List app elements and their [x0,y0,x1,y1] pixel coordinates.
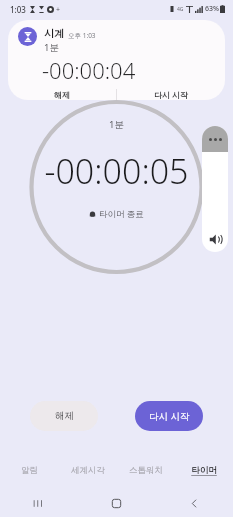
staticText: 스톱워치 [129,465,163,476]
button[interactable]: 타이머 [175,459,233,481]
staticText: 타이머 [191,465,217,476]
button[interactable]: 해제 [30,401,98,431]
staticText: 1분 [44,41,59,54]
button[interactable]: 해제 [8,89,116,100]
button[interactable]: 다시 시작 [135,401,203,431]
button[interactable]: 알림 [0,459,59,481]
staticText: 63% [205,4,219,14]
staticText: -00:00:04 [42,55,136,85]
button[interactable]: 스톱워치 [117,459,175,481]
button[interactable]: Back [155,489,233,517]
staticText: 다시 시작 [154,89,189,100]
staticText: 4G [177,6,184,13]
button[interactable]: Home [77,489,155,517]
staticText: 시계 [44,27,64,40]
staticText: + [56,5,61,15]
staticText: 1:03 [10,4,26,15]
staticText: 세계시각 [71,465,105,476]
button[interactable]: Recents [0,489,77,517]
staticText: 해제 [54,90,70,100]
button[interactable]: 다시 시작 [117,89,225,100]
staticText: -00:00:05 [44,148,189,194]
staticText: 1분 [109,118,124,131]
button[interactable]: Volume [202,226,228,252]
staticText: 타이머 종료 [99,208,144,220]
button[interactable]: 세계시각 [59,459,117,481]
staticText: 다시 시작 [149,410,190,423]
staticText: 오후 1:03 [68,31,96,40]
staticText: 해제 [55,410,74,422]
staticText: 알림 [21,465,38,476]
